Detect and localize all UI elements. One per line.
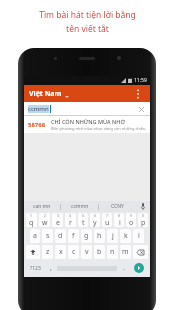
staticText: 0 bbox=[142, 213, 145, 218]
button[interactable]: l bbox=[133, 229, 144, 243]
staticText: , bbox=[50, 263, 52, 273]
staticText: Việt Nam bbox=[29, 89, 62, 99]
staticText: u bbox=[105, 218, 110, 227]
staticText: CHỈ CÒN NHỮNG MÙA NHỚ bbox=[51, 118, 125, 125]
button[interactable]: , bbox=[46, 261, 55, 275]
button[interactable]: 9 bbox=[126, 213, 136, 227]
button[interactable]: n bbox=[107, 245, 118, 259]
staticText: 8 bbox=[118, 213, 121, 218]
button[interactable]: 1 bbox=[26, 213, 37, 227]
button[interactable]: s bbox=[42, 229, 53, 243]
staticText: 2 bbox=[44, 213, 47, 218]
staticText: 1 bbox=[30, 213, 33, 218]
staticText: f bbox=[72, 231, 75, 241]
staticText: a bbox=[33, 231, 37, 241]
staticText: g bbox=[84, 231, 89, 241]
button[interactable]: 5 bbox=[78, 213, 88, 227]
button[interactable]: Backspace bbox=[133, 245, 148, 259]
button[interactable]: ccmmn bbox=[61, 201, 98, 212]
staticText: 11:59 bbox=[134, 77, 147, 84]
staticText: 4 bbox=[69, 213, 72, 218]
staticText: n bbox=[110, 247, 115, 257]
button[interactable]: b bbox=[94, 245, 105, 259]
staticText: 3 bbox=[57, 213, 60, 218]
staticText: i bbox=[119, 218, 121, 227]
button[interactable]: j bbox=[107, 229, 118, 243]
staticText: l bbox=[138, 231, 140, 241]
button[interactable]: ?123 bbox=[26, 261, 44, 275]
button[interactable]: 58768 bbox=[24, 116, 150, 133]
button[interactable]: d bbox=[55, 229, 66, 243]
button[interactable]: Enter bbox=[130, 261, 148, 275]
staticText: s bbox=[46, 231, 50, 241]
staticText: m bbox=[122, 247, 129, 257]
button[interactable]: 4 bbox=[65, 213, 76, 227]
button[interactable]: a bbox=[30, 229, 40, 243]
staticText: k bbox=[124, 231, 128, 241]
staticText: ?123 bbox=[30, 265, 41, 272]
staticText: o bbox=[129, 218, 134, 227]
staticText: 5 bbox=[82, 213, 85, 218]
staticText: 9 bbox=[130, 213, 133, 218]
button[interactable]: ccmmn bbox=[28, 105, 136, 113]
button[interactable]: Shift bbox=[26, 245, 40, 259]
button[interactable]: m bbox=[120, 245, 131, 259]
staticText: t bbox=[82, 218, 85, 227]
staticText: CCNY bbox=[111, 203, 124, 210]
button[interactable]: Clear bbox=[136, 104, 146, 114]
button[interactable]: v bbox=[81, 245, 92, 259]
button[interactable]: . bbox=[119, 261, 128, 275]
staticText: w bbox=[42, 218, 48, 227]
staticText: ccmmn bbox=[71, 203, 89, 210]
staticText: b bbox=[97, 247, 102, 257]
staticText: d bbox=[58, 231, 63, 241]
staticText: h bbox=[97, 231, 102, 241]
button[interactable]: z bbox=[42, 245, 53, 259]
button[interactable]: c bbox=[68, 245, 79, 259]
button[interactable]: f bbox=[68, 229, 79, 243]
button[interactable]: Việt Nam bbox=[29, 87, 69, 101]
button[interactable]: 3 bbox=[52, 213, 63, 227]
staticText: x bbox=[59, 247, 63, 257]
staticText: Tìm bài hát tiện lời bằng bbox=[39, 9, 136, 21]
staticText: q bbox=[29, 218, 34, 227]
staticText: Bốn phương nhớ mùa nhạc vàng còn những c… bbox=[51, 126, 146, 131]
button[interactable]: g bbox=[81, 229, 92, 243]
staticText: z bbox=[46, 247, 50, 257]
button[interactable]: can mn bbox=[24, 201, 60, 212]
staticText: tên viết tắt bbox=[66, 23, 109, 35]
button[interactable]: CCNY bbox=[99, 201, 136, 212]
button[interactable]: k bbox=[120, 229, 131, 243]
staticText: c bbox=[72, 247, 76, 257]
button[interactable]: Voice input bbox=[136, 201, 150, 212]
staticText: 6 bbox=[94, 213, 97, 218]
button[interactable]: 0 bbox=[138, 213, 148, 227]
button[interactable]: 8 bbox=[114, 213, 124, 227]
button[interactable]: 6 bbox=[90, 213, 100, 227]
staticText: can mn bbox=[33, 203, 51, 210]
staticText: y bbox=[93, 218, 97, 227]
staticText: e bbox=[56, 218, 60, 227]
staticText: 58768 bbox=[28, 121, 46, 129]
staticText: 7 bbox=[106, 213, 109, 218]
button[interactable]: 7 bbox=[102, 213, 112, 227]
button[interactable]: x bbox=[55, 245, 66, 259]
staticText: v bbox=[85, 247, 89, 257]
staticText: r bbox=[69, 218, 72, 227]
button[interactable]: h bbox=[94, 229, 105, 243]
staticText: j bbox=[112, 231, 114, 241]
button[interactable]: 2 bbox=[39, 213, 50, 227]
staticText: . bbox=[123, 263, 125, 273]
staticText: ccmmn bbox=[28, 105, 49, 113]
button[interactable]: More options bbox=[131, 87, 145, 101]
staticText: p bbox=[141, 218, 146, 227]
